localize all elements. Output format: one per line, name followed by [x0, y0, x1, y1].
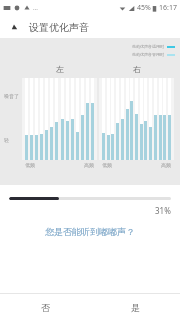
button[interactable]: Back: [9, 20, 23, 34]
staticText: 先前优声音适用时: [132, 44, 164, 49]
staticText: 先前优声音管用时: [132, 52, 164, 57]
staticText: 31%: [155, 205, 171, 216]
staticText: 是: [131, 302, 140, 313]
staticText: 45%: [137, 3, 151, 13]
staticText: 左: [56, 64, 64, 74]
staticText: 您是否能听到嘟嘟声？: [45, 226, 135, 237]
staticText: ...: [33, 4, 38, 12]
staticText: 噪音了: [4, 93, 19, 99]
staticText: 轻: [4, 137, 9, 143]
staticText: 右: [133, 64, 141, 74]
staticText: 高频: [84, 162, 94, 168]
staticText: 16:17: [159, 3, 177, 13]
staticText: 高频: [161, 162, 171, 168]
staticText: 设置优化声音: [29, 21, 89, 34]
staticText: 否: [41, 302, 50, 313]
staticText: 低频: [102, 162, 112, 168]
staticText: 低频: [25, 162, 35, 168]
button[interactable]: 否: [0, 294, 90, 320]
button[interactable]: 是: [90, 294, 180, 320]
